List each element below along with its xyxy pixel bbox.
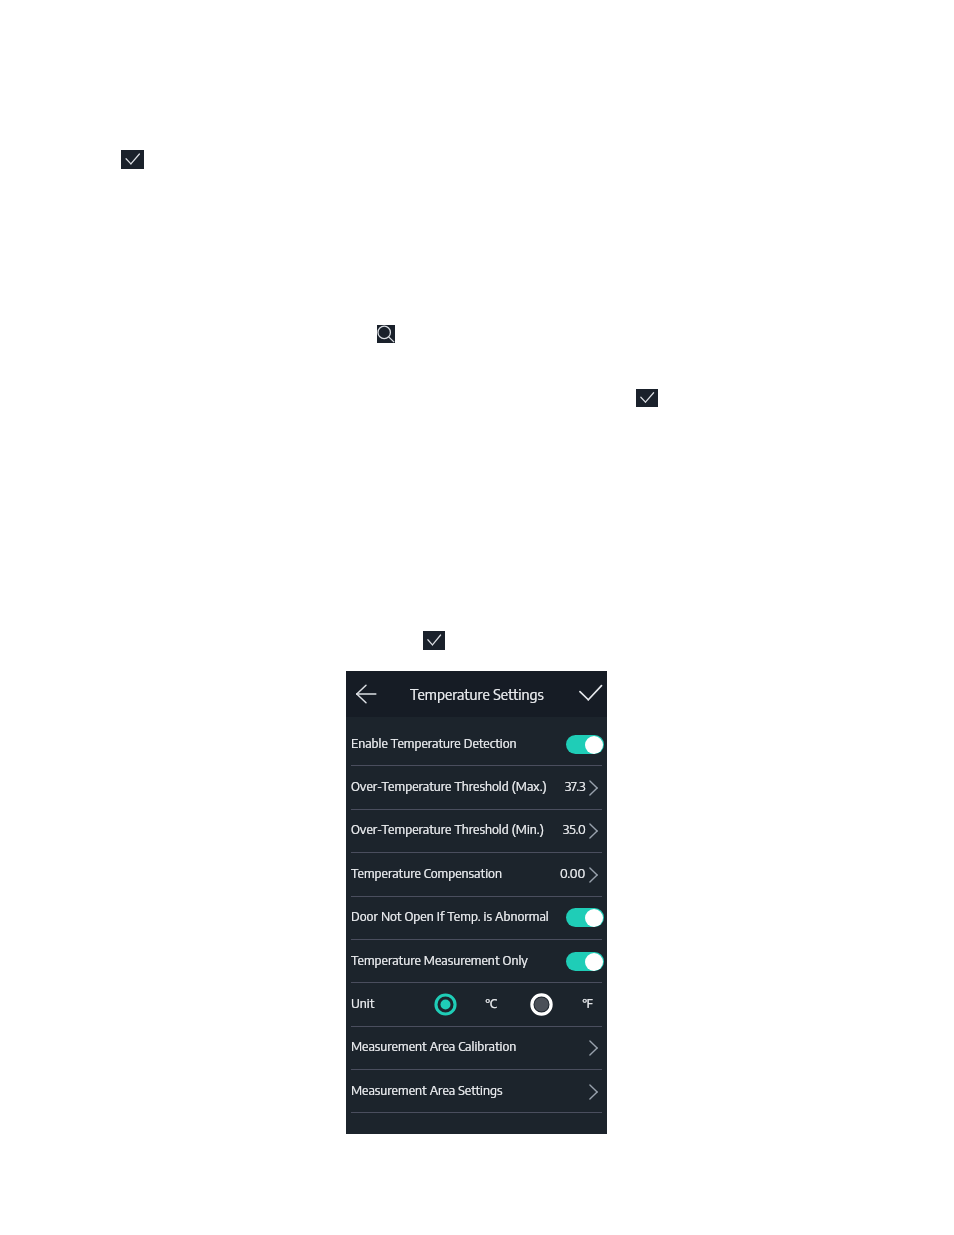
staticText: Unit — [351, 994, 375, 1011]
staticText: Measurement Area Settings — [351, 1081, 589, 1098]
staticText: ℃ — [485, 995, 498, 1012]
button[interactable]: Confirm — [636, 389, 658, 407]
staticText: Over-Temperature Threshold (Max.) — [351, 777, 565, 794]
button[interactable]: Search — [377, 325, 395, 343]
button[interactable]: Enable Temperature Detection — [346, 723, 607, 766]
button[interactable]: Toggle — [566, 952, 604, 971]
staticText: Measurement Area Calibration — [351, 1037, 589, 1054]
button[interactable]: Temperature Compensation — [346, 853, 607, 896]
staticText: Enable Temperature Detection — [351, 734, 566, 751]
staticText: 0.00 — [560, 864, 586, 881]
staticText: ℉ — [582, 995, 593, 1012]
button[interactable]: Measurement Area Settings — [346, 1070, 607, 1113]
button[interactable]: Toggle — [566, 735, 604, 754]
button[interactable]: Door Not Open If Temp. is Abnormal — [346, 896, 607, 939]
button[interactable]: Confirm — [423, 631, 445, 650]
button[interactable]: Confirm — [121, 150, 144, 169]
button[interactable]: Fahrenheit — [530, 993, 553, 1016]
button[interactable]: Toggle — [566, 908, 604, 927]
button[interactable]: Back — [349, 677, 383, 711]
button[interactable]: Over-Temperature Threshold (Min.) — [346, 809, 607, 852]
staticText: Temperature Compensation — [351, 864, 560, 881]
staticText: 35.0 — [563, 820, 586, 837]
button[interactable]: Measurement Area Calibration — [346, 1026, 607, 1069]
staticText: Temperature Measurement Only — [351, 951, 566, 968]
staticText: Over-Temperature Threshold (Min.) — [351, 820, 563, 837]
button[interactable]: Celsius — [434, 993, 457, 1016]
staticText: 37.3 — [565, 777, 586, 794]
button[interactable]: Save — [573, 677, 607, 711]
staticText: Temperature Settings — [410, 684, 544, 703]
staticText: Door Not Open If Temp. is Abnormal — [351, 907, 566, 924]
button[interactable]: Temperature Measurement Only — [346, 940, 607, 983]
button[interactable]: Over-Temperature Threshold (Max.) — [346, 766, 607, 809]
